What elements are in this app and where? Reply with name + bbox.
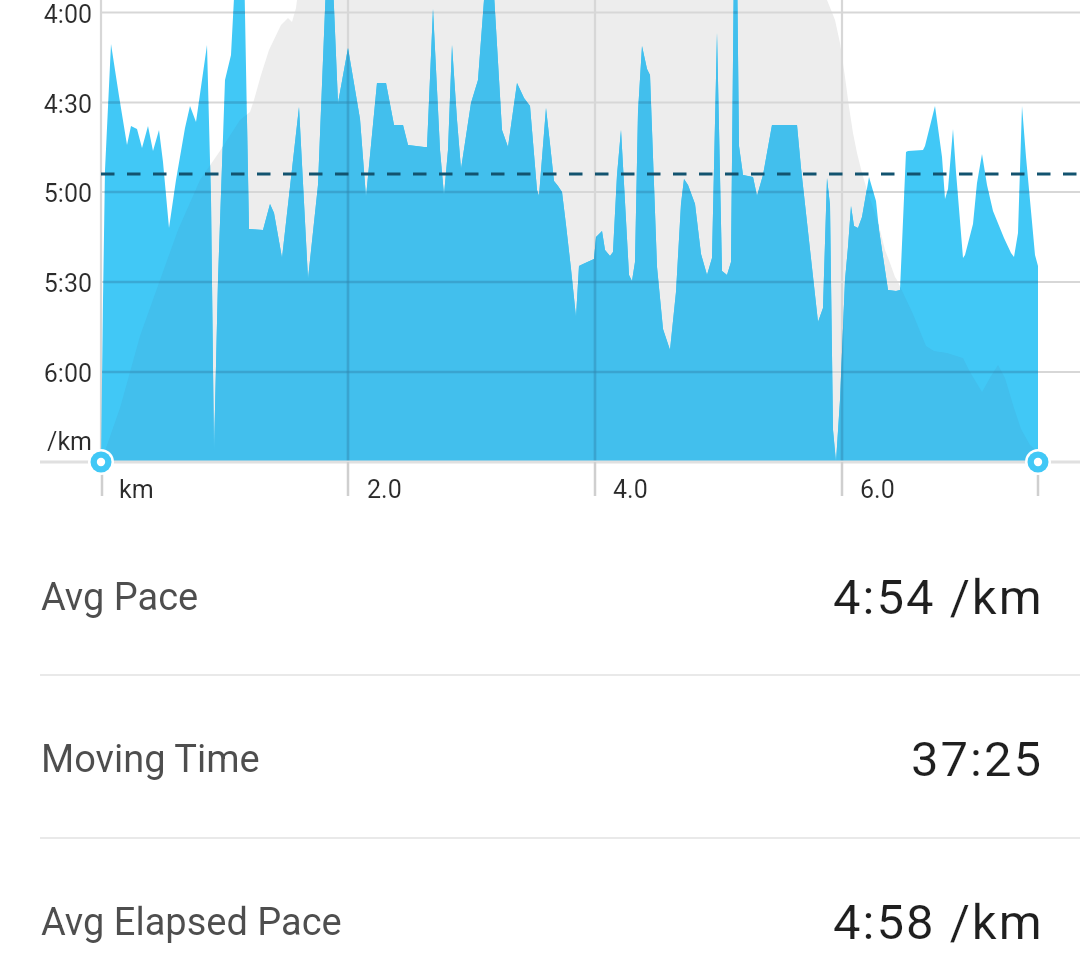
staticText: /km <box>0 427 92 456</box>
staticText: Avg Elapsed Pace <box>41 900 342 945</box>
staticText: 4:58 /km <box>833 894 1044 951</box>
staticText: 2.0 <box>367 475 402 504</box>
button[interactable]: Avg Elapsed Pace <box>0 841 1080 959</box>
button[interactable]: Avg Pace <box>0 520 1080 674</box>
staticText: 6.0 <box>860 475 895 504</box>
button[interactable]: Moving Time <box>0 678 1080 841</box>
staticText: Moving Time <box>41 737 260 782</box>
staticText: 5:30 <box>0 269 92 298</box>
staticText: 5:00 <box>0 179 92 208</box>
staticText: 4:00 <box>0 0 92 29</box>
staticText: 6:00 <box>0 359 92 388</box>
staticText: 37:25 <box>911 731 1044 788</box>
staticText: 4:30 <box>0 90 92 119</box>
staticText: 4:54 /km <box>833 569 1044 626</box>
staticText: Avg Pace <box>41 575 199 620</box>
staticText: 4.0 <box>613 475 648 504</box>
staticText: km <box>119 475 154 504</box>
